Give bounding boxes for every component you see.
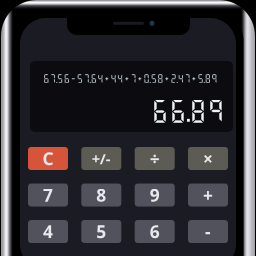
button[interactable]: 8	[81, 183, 121, 206]
staticText: 5	[96, 220, 106, 243]
button[interactable]: 5	[81, 220, 121, 243]
button[interactable]: +/-	[81, 147, 121, 170]
staticText: 6	[150, 220, 160, 243]
staticText: 8	[96, 183, 106, 206]
button[interactable]: 4	[28, 220, 68, 243]
staticText: 66.89	[151, 96, 225, 125]
button[interactable]: ×	[188, 147, 228, 170]
button[interactable]: ÷	[135, 147, 175, 170]
staticText: 7	[43, 183, 53, 206]
staticText: 9	[150, 183, 160, 206]
staticText: -	[205, 220, 211, 243]
staticText: +	[203, 183, 213, 206]
button[interactable]: 6	[135, 220, 175, 243]
staticText: +/-	[92, 149, 111, 168]
button[interactable]: C	[28, 147, 68, 170]
button[interactable]: 9	[135, 183, 175, 206]
staticText: C	[42, 147, 53, 170]
button[interactable]: +	[188, 183, 228, 206]
button[interactable]: 7	[28, 183, 68, 206]
button[interactable]: -	[188, 220, 228, 243]
staticText: ×	[203, 147, 213, 170]
staticText: ÷	[150, 147, 160, 170]
staticText: 4	[43, 220, 53, 243]
staticText: 67.56-57.64+44+7+0.58+2.47+5.89	[43, 73, 218, 84]
